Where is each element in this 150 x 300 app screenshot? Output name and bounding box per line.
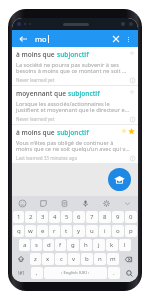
- button[interactable]: g: [67, 239, 79, 251]
- staticText: subjonctif: [57, 128, 89, 137]
- button[interactable]: 8: [99, 211, 111, 223]
- button[interactable]: moyennant que: [12, 86, 138, 124]
- button[interactable]: 0: [125, 211, 137, 223]
- button[interactable]: t: [61, 225, 72, 237]
- staticText: 2: [29, 213, 33, 221]
- button[interactable]: i: [99, 225, 111, 237]
- staticText: v: [72, 255, 76, 263]
- staticText: y: [77, 227, 81, 235]
- button[interactable]: Clipboard: [59, 198, 70, 209]
- button[interactable]: e: [37, 225, 48, 237]
- button[interactable]: Backspace: [120, 253, 137, 265]
- staticText: Never learned yet: [16, 77, 55, 83]
- staticText: Lorsque les associés/actionnaires le jus…: [16, 100, 131, 114]
- button[interactable]: ,: [31, 267, 43, 279]
- button[interactable]: u: [86, 225, 98, 237]
- button[interactable]: Emoji: [17, 198, 28, 209]
- button[interactable]: b: [81, 253, 93, 265]
- staticText: i: [104, 227, 106, 235]
- staticText: 4: [53, 213, 57, 221]
- staticText: n: [98, 255, 102, 263]
- staticText: 7: [90, 213, 94, 221]
- staticText: Never learned yet: [16, 116, 55, 122]
- button[interactable]: Back: [16, 32, 29, 45]
- button[interactable]: z: [30, 253, 41, 265]
- staticText: q: [17, 227, 21, 235]
- button[interactable]: m: [107, 253, 119, 265]
- button[interactable]: s: [31, 239, 42, 251]
- button[interactable]: d: [43, 239, 54, 251]
- button[interactable]: o: [112, 225, 124, 237]
- staticText: 3: [41, 213, 45, 221]
- staticText: u: [90, 227, 94, 235]
- button[interactable]: 7: [86, 211, 98, 223]
- staticText: Last learned 33 minutes ago: [16, 155, 78, 161]
- button[interactable]: c: [55, 253, 67, 265]
- staticText: s: [35, 241, 38, 249]
- button[interactable]: !#1: [13, 267, 30, 279]
- staticText: e: [41, 227, 45, 235]
- button[interactable]: k: [106, 239, 118, 251]
- button[interactable]: 1: [13, 211, 24, 223]
- staticText: d: [47, 241, 51, 249]
- staticText: ,: [36, 269, 38, 277]
- staticText: h: [84, 241, 88, 249]
- button[interactable]: à moins que: [12, 125, 138, 163]
- staticText: 9: [116, 213, 120, 221]
- button[interactable]: a: [19, 239, 30, 251]
- button[interactable]: f: [55, 239, 66, 251]
- staticText: o: [116, 227, 120, 235]
- button[interactable]: w: [25, 225, 36, 237]
- staticText: p: [129, 227, 133, 235]
- button[interactable]: Collapse keyboard: [122, 198, 133, 209]
- staticText: Vous n'êtes pas obligé de continuer à mo…: [16, 139, 131, 153]
- button[interactable]: à moins que: [12, 47, 138, 85]
- staticText: mo: [35, 34, 47, 44]
- staticText: 1: [17, 213, 21, 221]
- button[interactable]: 3: [37, 211, 48, 223]
- staticText: l: [124, 241, 126, 249]
- button[interactable]: Start learning: [108, 168, 131, 191]
- staticText: subjonctif: [57, 50, 89, 59]
- staticText: w: [28, 227, 33, 235]
- button[interactable]: n: [94, 253, 106, 265]
- staticText: La société ne pourra pas subvenir à ses …: [16, 61, 131, 75]
- staticText: 5: [65, 213, 69, 221]
- button[interactable]: Shift: [13, 253, 29, 265]
- button[interactable]: Voice input: [80, 198, 91, 209]
- button[interactable]: l: [119, 239, 131, 251]
- button[interactable]: j: [93, 239, 105, 251]
- button[interactable]: Keyboard settings: [101, 198, 112, 209]
- staticText: à moins que: [16, 128, 57, 137]
- button[interactable]: x: [42, 253, 54, 265]
- button[interactable]: h: [80, 239, 92, 251]
- button[interactable]: p: [125, 225, 137, 237]
- staticText: k: [110, 241, 114, 249]
- button[interactable]: ‹ English (UK) ›: [44, 267, 107, 279]
- staticText: j: [98, 241, 100, 249]
- staticText: r: [53, 227, 56, 235]
- staticText: 0: [129, 213, 133, 221]
- staticText: b: [85, 255, 89, 263]
- button[interactable]: r: [49, 225, 60, 237]
- staticText: x: [46, 255, 50, 263]
- button[interactable]: More options: [122, 33, 134, 45]
- button[interactable]: Search: [121, 267, 137, 279]
- staticText: f: [59, 241, 62, 249]
- staticText: c: [60, 255, 63, 263]
- button[interactable]: .: [108, 267, 120, 279]
- staticText: subjonctif: [68, 89, 100, 98]
- button[interactable]: v: [68, 253, 80, 265]
- button[interactable]: 2: [25, 211, 36, 223]
- button[interactable]: 5: [61, 211, 72, 223]
- button[interactable]: q: [13, 225, 24, 237]
- button[interactable]: 4: [49, 211, 60, 223]
- button[interactable]: Clear search: [109, 32, 122, 45]
- button[interactable]: y: [73, 225, 85, 237]
- staticText: à moins que: [16, 50, 57, 59]
- staticText: !#1: [18, 270, 25, 276]
- button[interactable]: 9: [112, 211, 124, 223]
- button[interactable]: 6: [73, 211, 85, 223]
- button[interactable]: Stickers: [38, 198, 49, 209]
- staticText: moyennant que: [16, 89, 68, 98]
